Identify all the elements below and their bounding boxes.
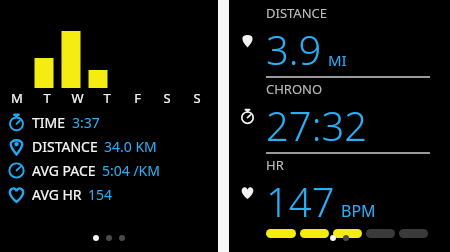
staticText: 3:37 bbox=[72, 113, 100, 132]
staticText: AVG HR bbox=[32, 185, 82, 204]
staticText: CHRONO bbox=[266, 80, 323, 98]
staticText: T bbox=[43, 89, 51, 107]
other: Stopwatch bbox=[240, 109, 255, 124]
button[interactable]: Average pace bbox=[0, 159, 218, 181]
staticText: F bbox=[134, 89, 141, 107]
other: Location bbox=[240, 33, 255, 48]
button[interactable]: Stopwatch bbox=[0, 111, 218, 133]
staticText: DISTANCE bbox=[32, 137, 98, 156]
staticText: 147 bbox=[266, 174, 335, 228]
staticText: 154 bbox=[88, 185, 113, 204]
staticText: S bbox=[193, 89, 201, 107]
button[interactable]: Heart rate bbox=[229, 154, 450, 228]
staticText: S bbox=[163, 89, 171, 107]
staticText: T bbox=[103, 89, 111, 107]
staticText: AVG PACE bbox=[32, 161, 96, 180]
staticText: 5:04 /KM bbox=[102, 161, 160, 180]
other: Heart rate bbox=[240, 185, 255, 200]
staticText: 27:32 bbox=[266, 98, 368, 152]
other: Heart rate bbox=[8, 186, 25, 203]
button[interactable]: Stopwatch bbox=[229, 78, 450, 152]
staticText: M bbox=[11, 89, 23, 107]
staticText: 3.9 bbox=[266, 22, 322, 76]
button[interactable]: Heart rate bbox=[0, 183, 218, 205]
staticText: W bbox=[71, 89, 84, 107]
other: Average pace bbox=[8, 162, 25, 179]
other: Location bbox=[8, 138, 25, 155]
staticText: 34.0 KM bbox=[104, 137, 157, 156]
staticText: TIME bbox=[32, 113, 66, 132]
button[interactable]: Location bbox=[229, 0, 450, 76]
other: Stopwatch bbox=[8, 114, 25, 131]
staticText: MI bbox=[328, 50, 347, 70]
staticText: DISTANCE bbox=[266, 4, 327, 22]
staticText: HR bbox=[266, 156, 284, 174]
staticText: BPM bbox=[341, 200, 376, 222]
button[interactable]: Location bbox=[0, 135, 218, 157]
